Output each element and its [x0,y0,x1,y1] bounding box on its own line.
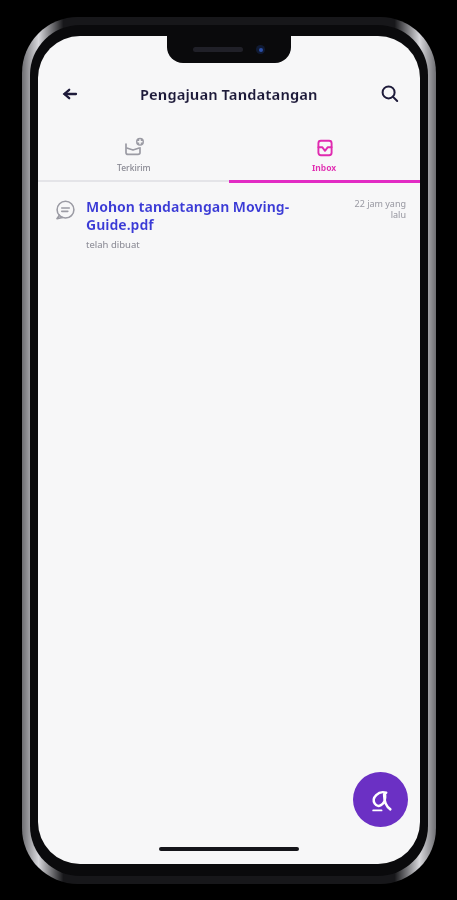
button[interactable]: Inbox [229,132,420,180]
button[interactable]: Terkirim [38,132,229,180]
button[interactable]: Mohon tandatangan Moving-Guide.pdf [38,183,420,263]
button[interactable]: Cari [372,76,408,112]
button[interactable]: Tanda tangan baru [353,772,408,827]
staticText: Terkirim [117,162,151,174]
staticText: Inbox [312,162,337,174]
staticText: 22 jam yang lalu [344,197,406,221]
staticText: Mohon tandatangan Moving-Guide.pdf [86,197,336,234]
staticText: telah dibuat [86,238,140,251]
staticText: Pengajuan Tandatangan [140,84,318,104]
button[interactable]: Kembali [52,76,88,112]
